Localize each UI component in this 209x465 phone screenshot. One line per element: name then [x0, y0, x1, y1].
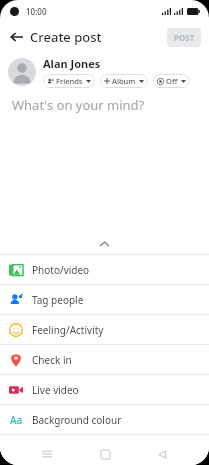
staticText: Friends: [56, 76, 83, 86]
staticText: POST: [174, 32, 195, 43]
staticText: Album: [112, 76, 136, 86]
staticText: Live video: [32, 383, 79, 397]
button[interactable]: Album: [100, 74, 148, 88]
button[interactable]: Live video: [0, 375, 209, 404]
staticText: Background colour: [32, 413, 122, 427]
button[interactable]: Check in: [0, 345, 209, 374]
staticText: What's on your mind?: [12, 96, 145, 114]
staticText: Aa: [10, 413, 23, 427]
button[interactable]: Back: [4, 24, 30, 50]
staticText: Check in: [32, 353, 72, 367]
button[interactable]: Friends: [43, 74, 95, 88]
staticText: Create post: [30, 28, 102, 46]
button[interactable]: Photo/video: [0, 255, 209, 284]
button[interactable]: Home: [95, 444, 115, 464]
button[interactable]: Off: [153, 74, 190, 88]
staticText: 10:00: [26, 6, 47, 17]
staticText: Off: [166, 76, 178, 86]
staticText: Photo/video: [32, 263, 90, 277]
button[interactable]: Feeling/Activity: [0, 315, 209, 344]
staticText: Camera: [32, 443, 69, 457]
button[interactable]: Tag people: [0, 285, 209, 314]
button[interactable]: Camera: [0, 435, 209, 464]
staticText: Alan Jones: [43, 56, 101, 71]
button[interactable]: Recents: [37, 444, 57, 464]
staticText: Tag people: [32, 293, 84, 307]
button[interactable]: Expand: [0, 234, 209, 254]
button[interactable]: POST: [167, 28, 201, 47]
button[interactable]: Back: [152, 444, 172, 464]
staticText: Feeling/Activity: [32, 323, 104, 337]
button[interactable]: Aa: [0, 405, 209, 434]
